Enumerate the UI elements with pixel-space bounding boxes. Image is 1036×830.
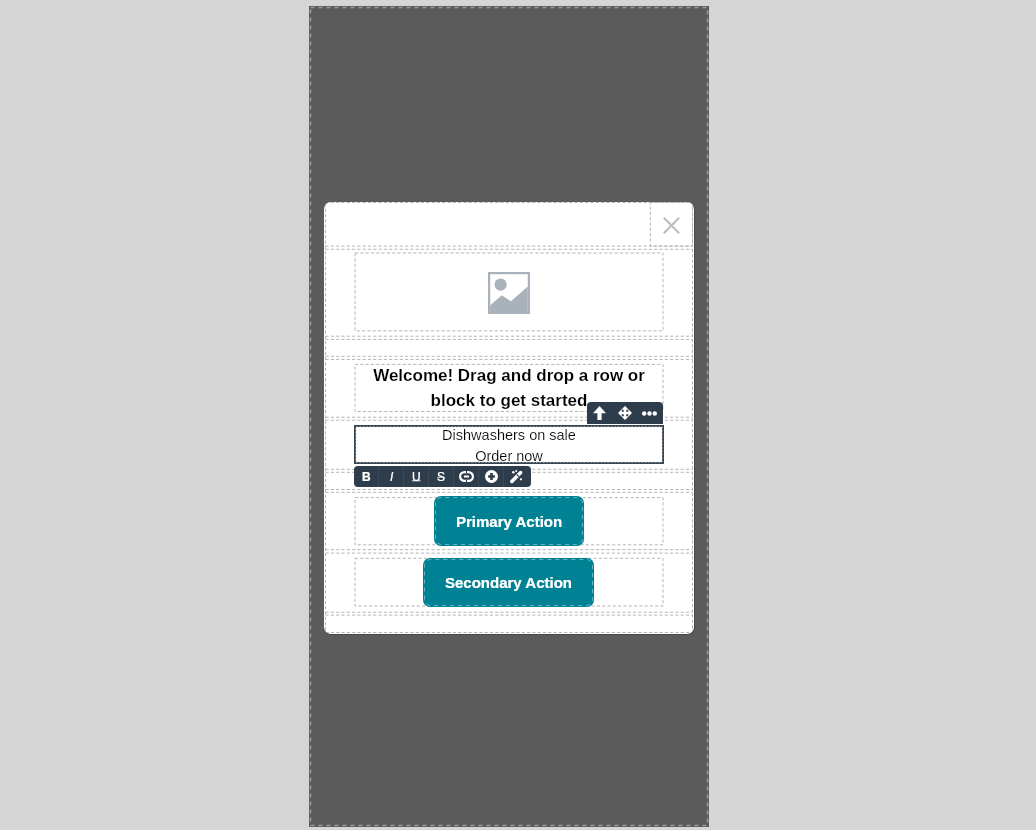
button[interactable]: Close bbox=[650, 202, 694, 246]
button[interactable]: More options bbox=[637, 402, 662, 424]
staticText: S bbox=[437, 470, 446, 483]
staticText: B bbox=[362, 470, 371, 483]
button[interactable]: Strikethrough bbox=[429, 466, 454, 487]
button[interactable]: Underline bbox=[404, 466, 429, 487]
button[interactable]: AI assist bbox=[504, 466, 529, 487]
staticText: Secondary Action bbox=[445, 574, 572, 591]
button[interactable]: Secondary Action bbox=[423, 558, 594, 607]
button[interactable]: Dishwashers on sale Order now bbox=[354, 425, 664, 464]
button[interactable]: Welcome! Drag and drop a row or block to… bbox=[355, 364, 663, 412]
button[interactable]: Bold bbox=[354, 466, 379, 487]
button[interactable]: Primary Action bbox=[434, 496, 584, 546]
staticText: U bbox=[412, 470, 421, 483]
staticText: Primary Action bbox=[456, 513, 563, 530]
button[interactable]: Move bbox=[612, 402, 637, 424]
button[interactable]: Move up bbox=[587, 402, 612, 424]
staticText: I bbox=[390, 470, 394, 483]
staticText: Welcome! Drag and drop a row or block to… bbox=[369, 366, 649, 410]
button[interactable]: Image placeholder bbox=[488, 272, 530, 314]
button[interactable]: Insert link bbox=[454, 466, 479, 487]
button[interactable]: Italic bbox=[379, 466, 404, 487]
staticText: Dishwashers on sale Order now bbox=[354, 427, 664, 464]
button[interactable]: Add bbox=[479, 466, 504, 487]
